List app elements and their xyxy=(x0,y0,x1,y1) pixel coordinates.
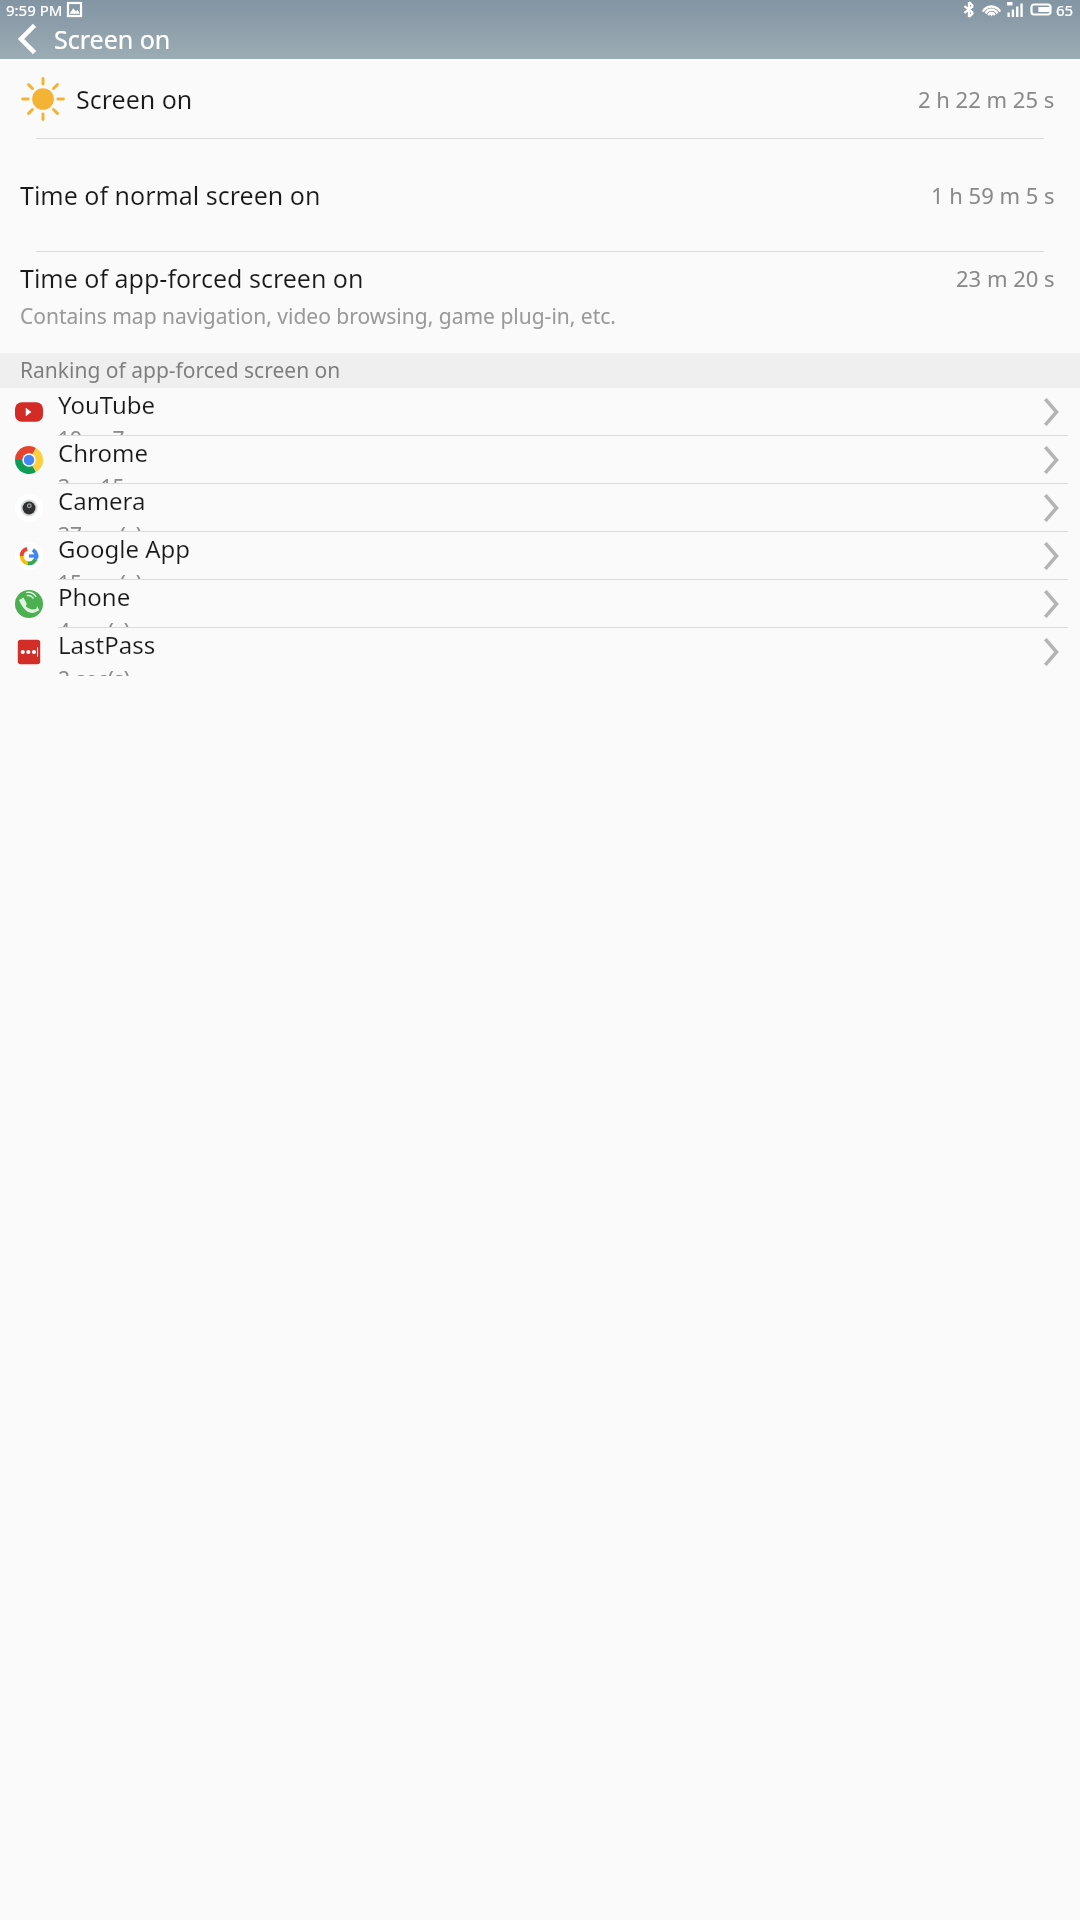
staticText: 65 xyxy=(1056,0,1074,19)
button[interactable]: YouTube xyxy=(0,388,1080,436)
staticText: Screen on xyxy=(54,22,171,56)
staticText: 9:59 PM xyxy=(6,0,63,19)
staticText: Camera xyxy=(58,484,146,517)
button[interactable]: Time of app-forced screen on xyxy=(0,252,1080,353)
staticText: Screen on xyxy=(76,82,193,116)
staticText: Time of app-forced screen on xyxy=(20,261,364,295)
staticText: 1 h 59 m 5 s xyxy=(931,180,1055,210)
staticText: Phone xyxy=(58,580,131,613)
staticText: 2 sec(s) xyxy=(58,665,131,676)
staticText: Contains map navigation, video browsing,… xyxy=(20,302,616,331)
staticText: Ranking of app-forced screen on xyxy=(20,356,341,385)
staticText: Chrome xyxy=(58,436,148,469)
staticText: 37 sec(s) xyxy=(58,521,143,532)
button[interactable]: Screen on xyxy=(0,59,1080,138)
button[interactable]: Phone xyxy=(0,580,1080,628)
staticText: 3 m 15 s xyxy=(58,473,141,484)
staticText: 15 sec(s) xyxy=(58,569,143,580)
button[interactable]: Chrome xyxy=(0,436,1080,484)
button[interactable]: Google App xyxy=(0,532,1080,580)
button[interactable]: Back xyxy=(0,19,54,59)
staticText: Time of normal screen on xyxy=(20,178,321,212)
button[interactable]: Time of normal screen on xyxy=(0,139,1080,251)
staticText: Google App xyxy=(58,532,191,565)
staticText: 2 h 22 m 25 s xyxy=(918,84,1055,114)
button[interactable]: LastPass xyxy=(0,628,1080,676)
staticText: YouTube xyxy=(58,388,156,421)
staticText: 4 sec(s) xyxy=(58,617,131,628)
staticText: 23 m 20 s xyxy=(956,263,1055,293)
staticText: LastPass xyxy=(58,628,156,661)
staticText: 19 m 7 s xyxy=(58,425,141,436)
button[interactable]: Camera xyxy=(0,484,1080,532)
